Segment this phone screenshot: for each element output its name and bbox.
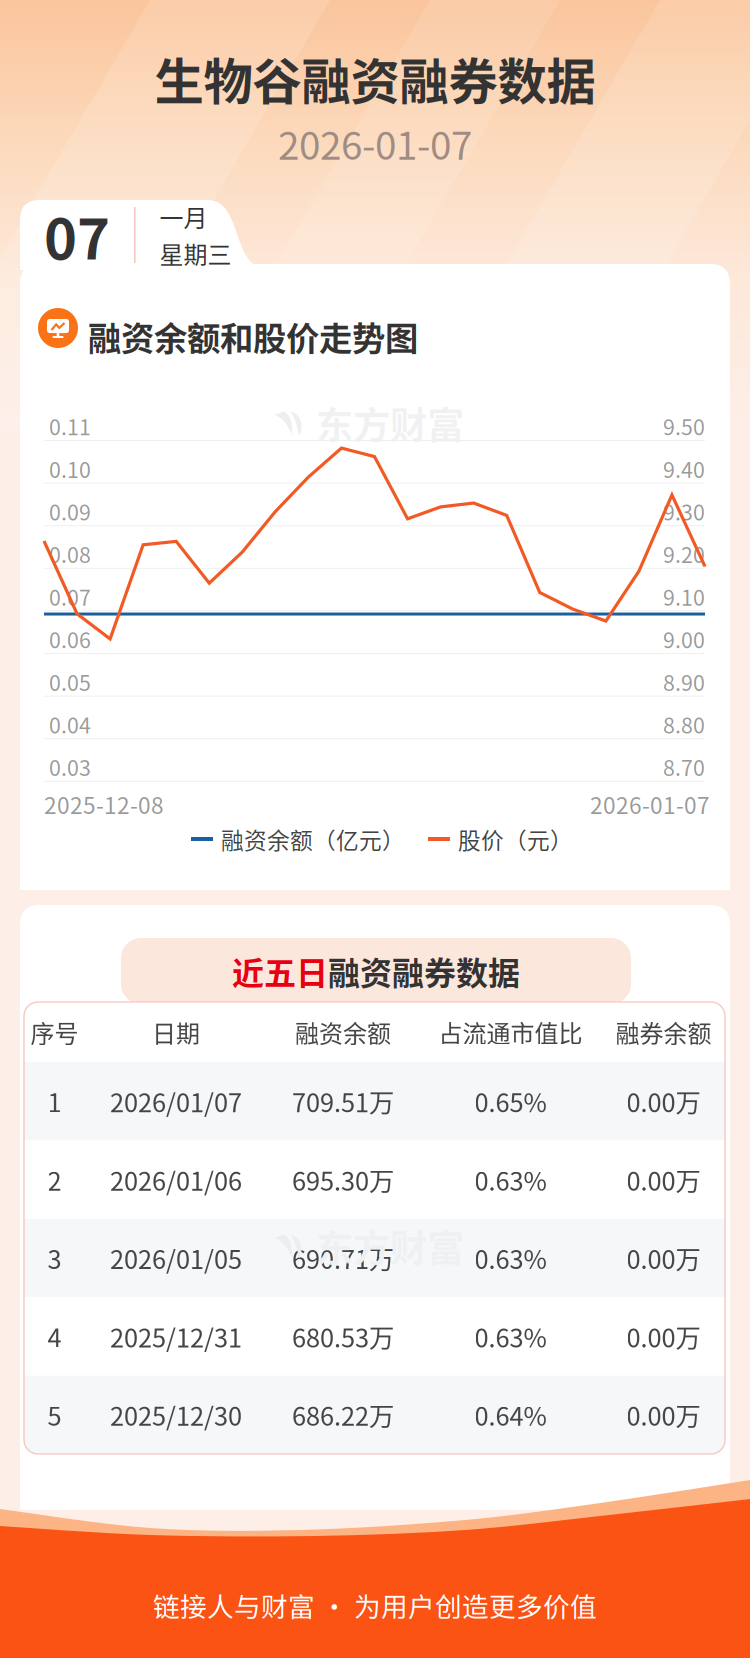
staticText: 07 xyxy=(44,194,110,276)
staticText: 2026-01-07 xyxy=(278,115,472,171)
staticText: 星期三 xyxy=(160,236,232,271)
staticText: 9.20 xyxy=(663,538,705,569)
staticText: 0.11 xyxy=(49,411,91,441)
staticText: 融资余额和股价走势图 xyxy=(88,312,418,360)
staticText: 日期 xyxy=(152,1015,200,1049)
staticText: 0.00万 xyxy=(626,1083,700,1120)
staticText: 2026-01-07 xyxy=(590,788,710,820)
staticText: 序号 xyxy=(30,1015,78,1049)
staticText: 709.51万 xyxy=(292,1083,394,1120)
staticText: 0.63% xyxy=(474,1161,546,1198)
staticText: 融资融券数据 xyxy=(328,948,520,994)
staticText: 0.04 xyxy=(49,709,91,740)
staticText: 4 xyxy=(47,1318,61,1355)
staticText: 0.05 xyxy=(49,666,91,697)
staticText: 占流通市值比 xyxy=(438,1015,582,1049)
staticText: 9.40 xyxy=(663,453,705,484)
staticText: 9.10 xyxy=(663,581,705,612)
staticText: 近五日 xyxy=(232,948,328,994)
staticText: 0.64% xyxy=(474,1396,546,1433)
staticText: 融资余额（亿元） xyxy=(221,823,405,855)
staticText: 0.63% xyxy=(474,1240,546,1276)
staticText: 2026/01/07 xyxy=(110,1083,242,1120)
staticText: 0.00万 xyxy=(626,1318,700,1355)
staticText: 0.00万 xyxy=(626,1161,700,1198)
staticText: 链接人与财富 · 为用户创造更多价值 xyxy=(153,1586,597,1624)
staticText: 0.10 xyxy=(49,453,91,484)
staticText: 3 xyxy=(47,1240,61,1276)
staticText: 690.71万 xyxy=(292,1240,394,1276)
staticText: 0.03 xyxy=(49,751,91,782)
staticText: 0.06 xyxy=(49,624,91,654)
staticText: 股价（元） xyxy=(458,823,573,855)
staticText: 2 xyxy=(47,1161,61,1198)
staticText: 2025-12-08 xyxy=(44,788,164,820)
staticText: 0.08 xyxy=(49,538,91,569)
staticText: 8.90 xyxy=(663,666,705,697)
staticText: 东方财富 xyxy=(316,396,464,450)
staticText: 2026/01/05 xyxy=(110,1240,242,1276)
staticText: 9.30 xyxy=(663,496,705,527)
staticText: 0.00万 xyxy=(626,1240,700,1276)
staticText: 8.70 xyxy=(663,751,705,782)
staticText: 8.80 xyxy=(663,709,705,740)
staticText: 9.50 xyxy=(663,411,705,441)
staticText: 生物谷融资融券数据 xyxy=(154,42,595,114)
staticText: 695.30万 xyxy=(292,1161,394,1198)
staticText: 0.63% xyxy=(474,1318,546,1355)
staticText: 2025/12/31 xyxy=(110,1318,242,1355)
staticText: 1 xyxy=(47,1083,61,1120)
staticText: 0.09 xyxy=(49,496,91,527)
staticText: 9.00 xyxy=(663,624,705,654)
staticText: 一月 xyxy=(160,199,208,234)
staticText: 0.00万 xyxy=(626,1396,700,1433)
staticText: 融资余额 xyxy=(295,1015,391,1049)
staticText: 0.07 xyxy=(49,581,91,612)
staticText: 融券余额 xyxy=(615,1015,711,1049)
staticText: 686.22万 xyxy=(292,1396,394,1433)
staticText: 2026/01/06 xyxy=(110,1161,242,1198)
staticText: 0.65% xyxy=(474,1083,546,1120)
staticText: 东方财富 xyxy=(316,1219,464,1273)
staticText: 2025/12/30 xyxy=(110,1396,242,1433)
staticText: 680.53万 xyxy=(292,1318,394,1355)
staticText: 5 xyxy=(47,1396,61,1433)
